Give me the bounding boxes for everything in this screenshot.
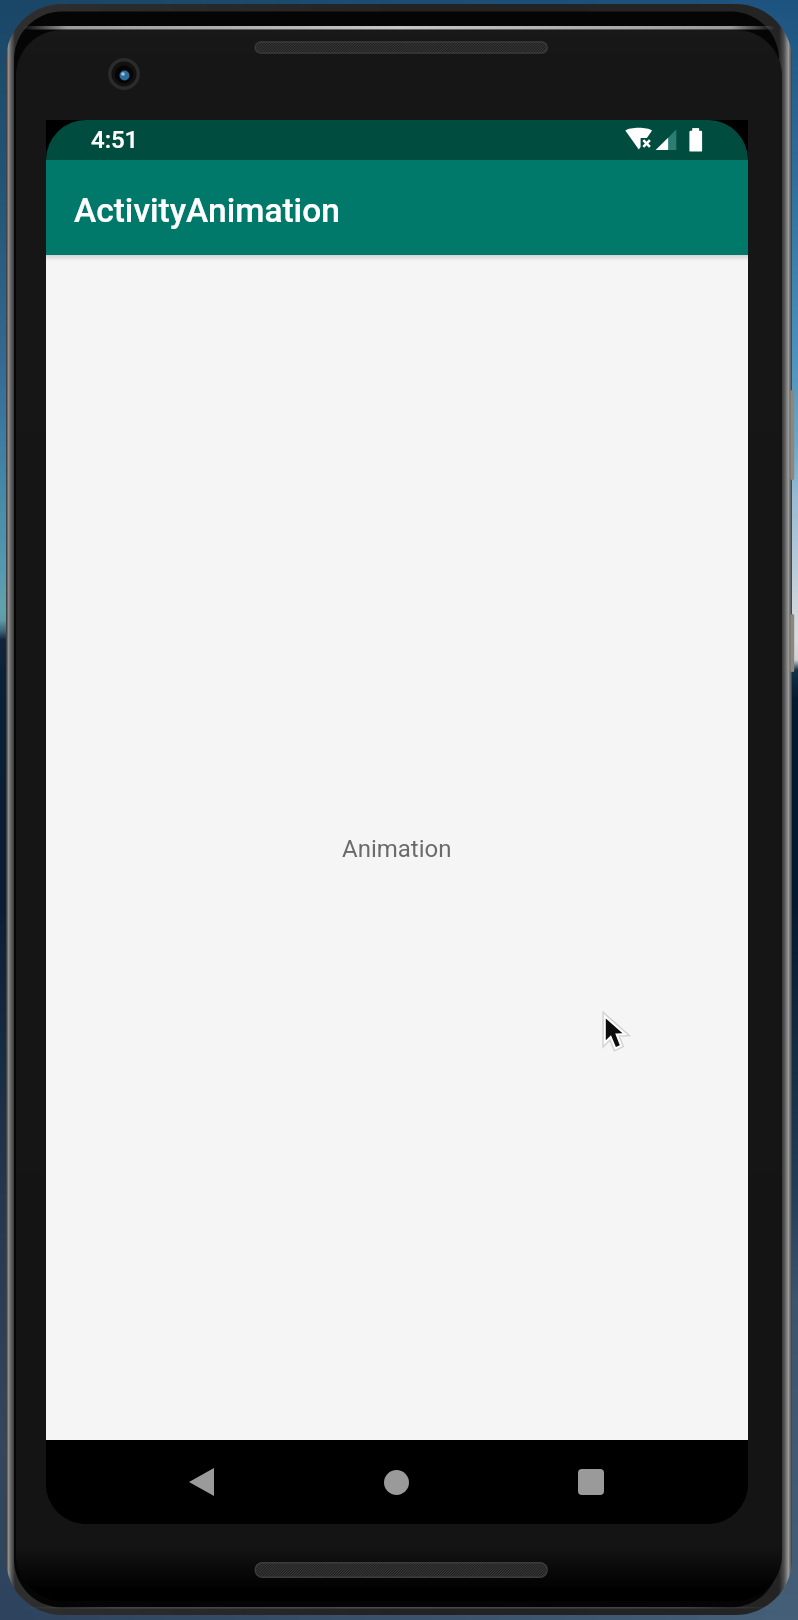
button[interactable]: Home bbox=[350, 1440, 442, 1524]
staticText: Animation bbox=[342, 835, 452, 863]
button[interactable]: Back bbox=[155, 1440, 247, 1524]
staticText: ActivityAnimation bbox=[74, 191, 340, 230]
staticText: 4:51 bbox=[91, 126, 139, 154]
button[interactable]: Recent apps bbox=[545, 1440, 637, 1524]
